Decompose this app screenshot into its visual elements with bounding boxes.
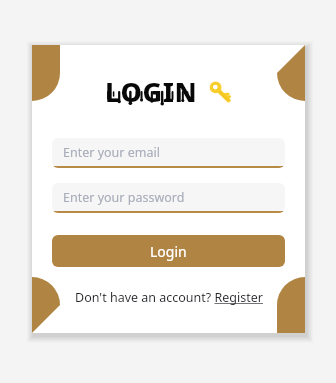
button[interactable]: Enter your password <box>52 183 285 213</box>
staticText: Enter your password <box>63 189 185 206</box>
button[interactable]: Don't have an account? Register <box>32 289 305 306</box>
staticText: Enter your email <box>63 144 160 161</box>
staticText: Login <box>150 242 187 261</box>
button[interactable]: Login <box>52 235 285 267</box>
button[interactable]: Enter your email <box>52 138 285 168</box>
staticText: Don't have an account? Register <box>75 289 263 306</box>
staticText: LOGIN <box>105 73 198 110</box>
other: Key <box>207 79 232 104</box>
